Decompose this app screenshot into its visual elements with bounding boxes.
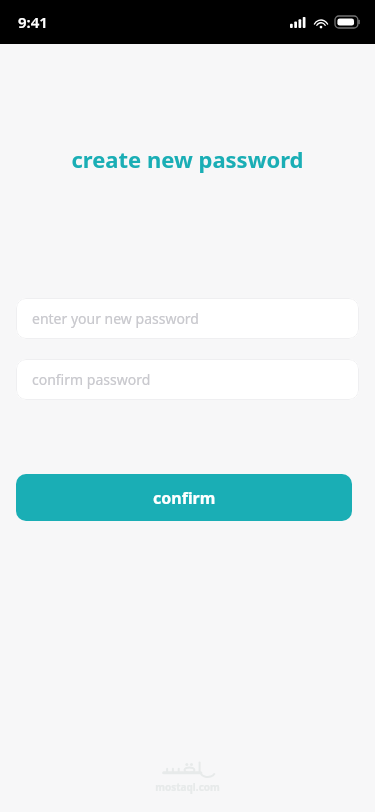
button[interactable]: confirm [16, 474, 352, 521]
staticText: mostaql.com [155, 780, 220, 794]
staticText: enter your new password [32, 309, 199, 328]
staticText: create new password [71, 144, 304, 174]
button[interactable]: enter your new password [16, 298, 359, 339]
staticText: 9:41 [18, 12, 48, 32]
staticText: confirm password [32, 370, 151, 389]
staticText: confirm [153, 487, 216, 509]
button[interactable]: confirm password [16, 359, 359, 400]
